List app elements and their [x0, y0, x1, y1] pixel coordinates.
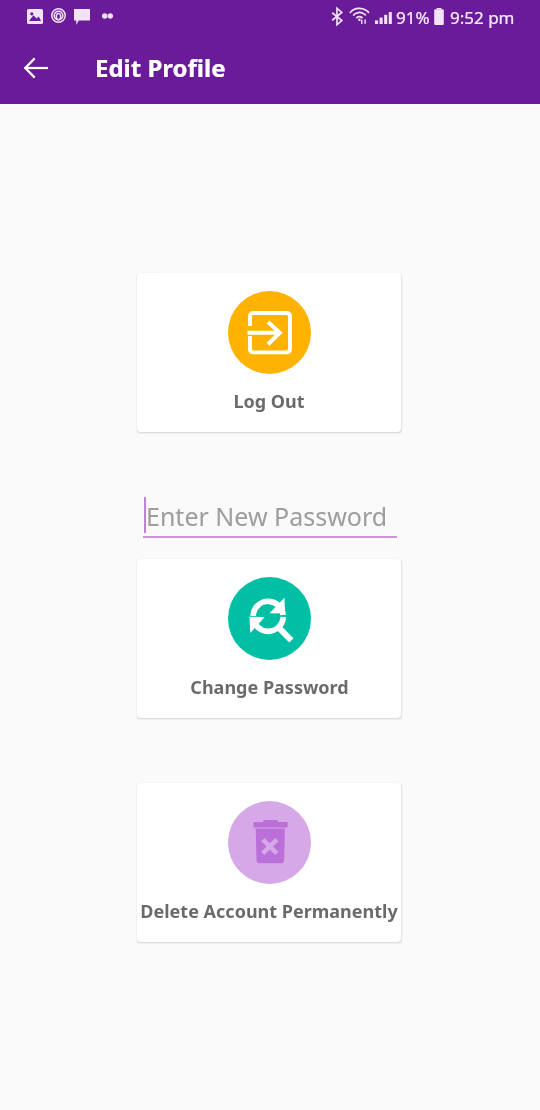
button[interactable]: Change Password	[137, 559, 401, 718]
button[interactable]: Back	[14, 46, 58, 90]
staticText: 91%	[396, 6, 430, 29]
staticText: 9:52 pm	[450, 6, 515, 29]
staticText: Edit Profile	[95, 51, 226, 84]
button[interactable]: Delete Account Permanently	[137, 783, 401, 942]
staticText: Change Password	[190, 675, 349, 700]
button[interactable]: Enter New Password	[143, 492, 397, 538]
staticText: Delete Account Permanently	[140, 899, 398, 924]
staticText: Enter New Password	[146, 499, 388, 533]
button[interactable]: Log Out	[137, 273, 401, 432]
staticText: Log Out	[233, 389, 305, 414]
